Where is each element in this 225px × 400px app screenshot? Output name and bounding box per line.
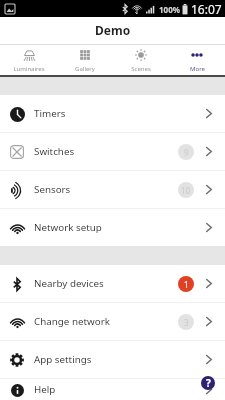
button[interactable]: Network setup xyxy=(0,209,225,246)
staticText: 10 xyxy=(181,185,191,196)
staticText: Timers xyxy=(34,107,66,120)
staticText: Sensors xyxy=(34,183,71,196)
staticText: App settings xyxy=(34,353,92,366)
button[interactable]: Nearby devices xyxy=(0,265,225,302)
staticText: 9 xyxy=(184,147,189,158)
staticText: Gallery xyxy=(75,65,95,73)
staticText: More xyxy=(190,65,205,73)
staticText: 3 xyxy=(184,317,189,328)
staticText: Nearby devices xyxy=(34,277,104,290)
staticText: Switches xyxy=(34,145,75,158)
staticText: Luminaires xyxy=(13,65,45,73)
staticText: ? xyxy=(206,376,211,390)
button[interactable]: Help xyxy=(201,376,215,390)
staticText: Change network xyxy=(34,315,110,328)
staticText: 16:07 xyxy=(191,1,222,17)
staticText: Demo xyxy=(95,22,131,38)
staticText: 1 xyxy=(184,279,189,290)
button[interactable]: Help xyxy=(0,379,225,400)
button[interactable]: Switches xyxy=(0,133,225,170)
button[interactable]: Luminaires xyxy=(0,45,57,73)
button[interactable]: Timers xyxy=(0,95,225,132)
staticText: 100% xyxy=(159,4,180,15)
button[interactable]: Change network xyxy=(0,303,225,340)
staticText: Scenes xyxy=(131,65,151,73)
button[interactable]: App settings xyxy=(0,341,225,378)
staticText: Network setup xyxy=(34,221,102,234)
button[interactable]: Scenes xyxy=(113,45,169,73)
button[interactable]: More xyxy=(169,45,225,73)
button[interactable]: Gallery xyxy=(57,45,113,73)
button[interactable]: Sensors xyxy=(0,171,225,208)
staticText: Help xyxy=(34,383,56,396)
